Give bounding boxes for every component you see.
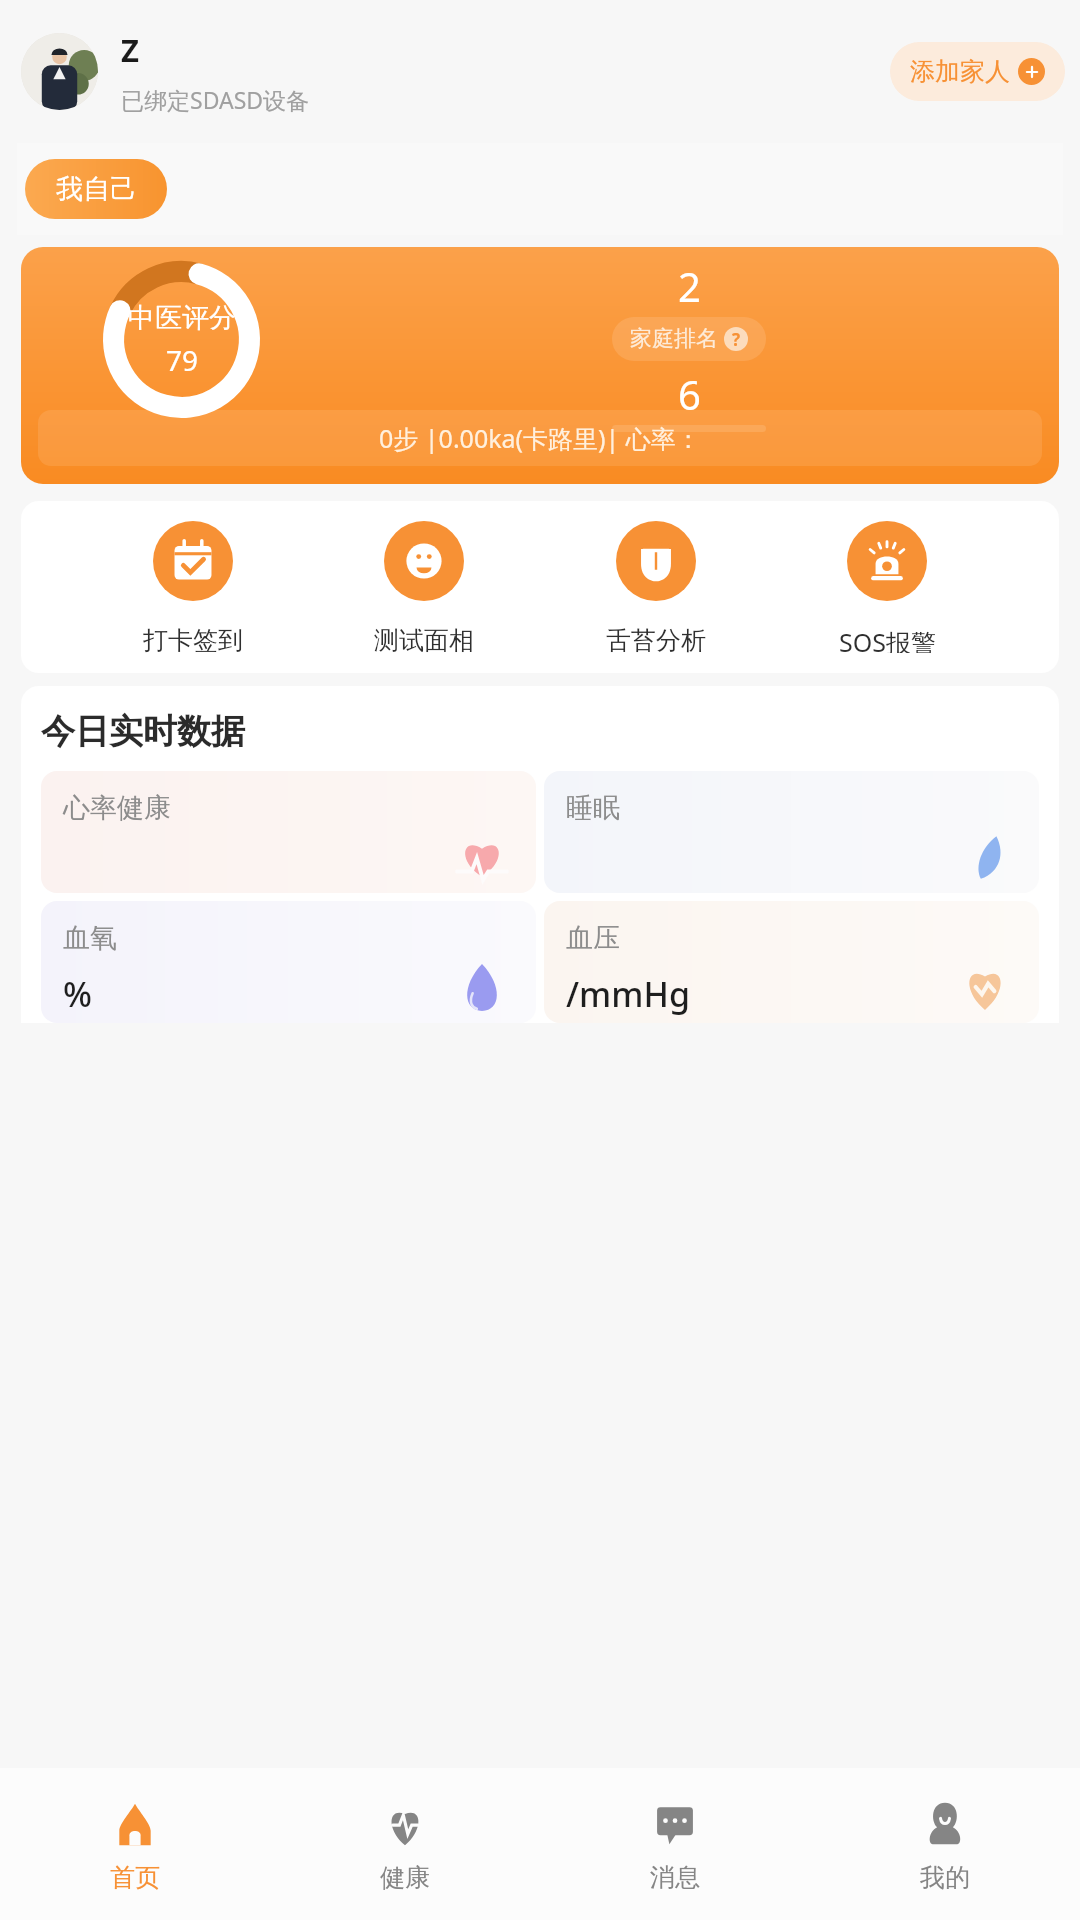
staticText: 已绑定SDASD设备 <box>121 84 310 115</box>
button[interactable]: 添加家人 <box>890 42 1065 101</box>
button[interactable]: 家庭排名 <box>612 317 766 361</box>
button[interactable]: 同龄排名 <box>612 425 766 432</box>
staticText: 首页 <box>110 1862 160 1893</box>
button[interactable]: Profile photo <box>21 33 98 110</box>
button[interactable]: 睡眠 <box>544 771 1039 893</box>
staticText: 0步 |0.00ka(卡路里)| 心率： <box>379 421 701 455</box>
staticText: 血氧 <box>63 921 117 955</box>
button[interactable]: 我的 <box>810 1768 1080 1920</box>
staticText: 79 <box>166 341 199 379</box>
staticText: 添加家人 <box>910 56 1010 87</box>
button[interactable]: 首页 <box>0 1768 270 1920</box>
staticText: /mmHg <box>566 971 690 1017</box>
button[interactable]: 健康 <box>270 1768 540 1920</box>
button[interactable]: 打卡签到 <box>122 521 264 653</box>
button[interactable]: 中医评分 <box>21 247 1059 484</box>
staticText: Z <box>121 29 139 71</box>
staticText: 今日实时数据 <box>41 710 245 753</box>
staticText: SOS报警 <box>839 625 936 653</box>
button[interactable]: 消息 <box>540 1768 810 1920</box>
staticText: 心率健康 <box>63 791 171 825</box>
button[interactable]: 心率健康 <box>41 771 536 893</box>
staticText: 家庭排名 <box>630 325 718 353</box>
staticText: 测试面相 <box>374 625 474 653</box>
button[interactable]: 血压 <box>544 901 1039 1023</box>
staticText: 6 <box>678 367 701 421</box>
staticText: % <box>63 971 92 1017</box>
staticText: 消息 <box>650 1862 700 1893</box>
staticText: 血压 <box>566 921 620 955</box>
staticText: 打卡签到 <box>143 625 243 653</box>
button[interactable]: 测试面相 <box>353 521 495 653</box>
staticText: 舌苔分析 <box>606 625 706 653</box>
staticText: 健康 <box>380 1862 430 1893</box>
staticText: 中医评分 <box>128 301 236 335</box>
staticText: 我的 <box>920 1862 970 1893</box>
button[interactable]: 0步 |0.00ka(卡路里)| 心率： <box>38 410 1042 466</box>
staticText: 2 <box>678 259 701 313</box>
button[interactable]: 血氧 <box>41 901 536 1023</box>
button[interactable]: 我自己 <box>25 159 167 219</box>
staticText: 我自己 <box>56 172 137 206</box>
staticText: 睡眠 <box>566 791 620 825</box>
button[interactable]: 舌苔分析 <box>585 521 727 653</box>
staticText: ? <box>732 328 741 351</box>
button[interactable]: SOS报警 <box>816 521 958 653</box>
